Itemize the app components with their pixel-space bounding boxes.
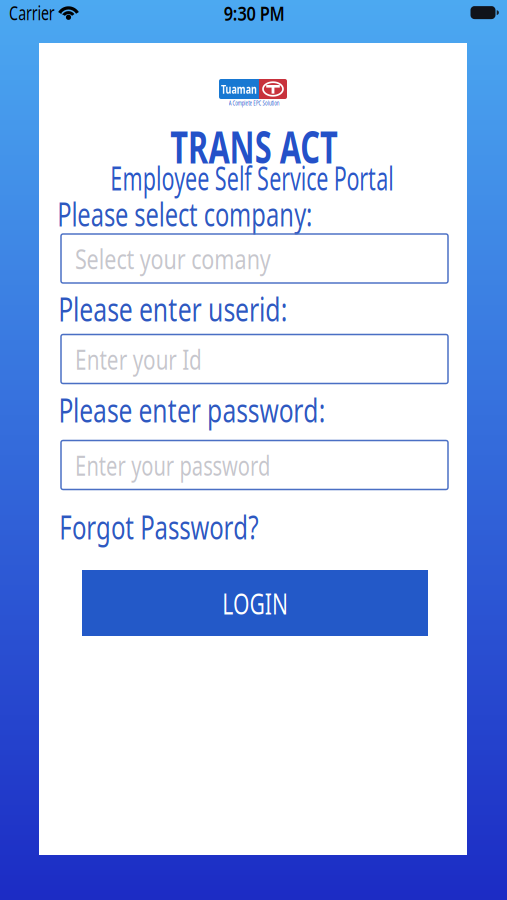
- staticText: Forgot Password?: [26, 506, 292, 548]
- button[interactable]: Select your comany: [61, 234, 448, 283]
- staticText: TRANS ACT: [131, 116, 377, 176]
- staticText: Please enter userid:: [25, 288, 321, 330]
- staticText: Enter your password: [75, 446, 346, 484]
- staticText: Enter your Id: [75, 340, 246, 378]
- button[interactable]: Enter your password: [61, 440, 448, 489]
- staticText: LOGIN: [209, 583, 300, 622]
- button[interactable]: Forgot Password?: [26, 506, 292, 548]
- staticText: Employee Self Service Portal: [41, 157, 462, 199]
- staticText: Carrier: [0, 0, 64, 26]
- staticText: 9:30 PM: [217, 0, 292, 26]
- button[interactable]: Enter your Id: [61, 334, 448, 383]
- button[interactable]: LOGIN: [82, 570, 428, 636]
- staticText: Tuaman: [215, 81, 263, 97]
- staticText: Please enter password:: [18, 389, 365, 431]
- staticText: Select your comany: [75, 240, 329, 277]
- staticText: A Complete EPC Solution: [215, 99, 293, 107]
- staticText: Please select company:: [12, 193, 357, 235]
